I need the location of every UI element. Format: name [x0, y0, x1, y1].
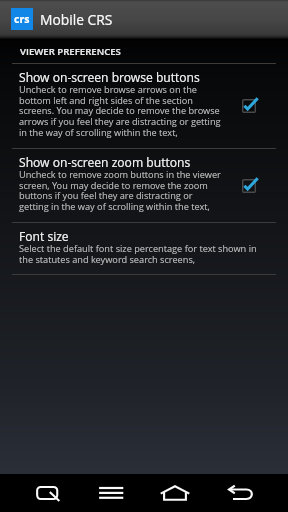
button[interactable]: Show on-screen browse buttons [0, 64, 288, 148]
button[interactable]: Recent apps [16, 474, 80, 512]
button[interactable]: Toggle [242, 177, 288, 195]
staticText: screen, You may decide to remove the zoo… [19, 181, 208, 191]
staticText: bottom left and right sides of the secti… [19, 96, 193, 106]
button[interactable]: Menu [79, 474, 143, 512]
staticText: buttons if you feel they are distracting… [19, 191, 193, 201]
button[interactable]: Font size [0, 223, 288, 274]
staticText: getting in the way of scrolling within t… [19, 202, 210, 212]
button[interactable]: Home [143, 474, 207, 512]
button[interactable]: App icon, navigate up [11, 8, 33, 30]
staticText: Mobile CRS [40, 10, 113, 29]
staticText: Uncheck to remove zoom buttons in the vi… [19, 170, 221, 180]
staticText: Font size [19, 229, 69, 244]
staticText: Show on-screen zoom buttons [19, 155, 191, 170]
staticText: arrows if you feel they are distracting … [19, 117, 221, 127]
staticText: Select the default font size percentage … [19, 244, 257, 254]
button[interactable]: Back [208, 474, 272, 512]
staticText: Uncheck to remove browse arrows on the [19, 85, 197, 95]
button[interactable]: Toggle [242, 97, 288, 115]
staticText: in the way of scrolling within the text, [19, 128, 178, 138]
staticText: VIEWER PREFERENCES [20, 46, 121, 57]
staticText: screens. You may decide to remove the br… [19, 106, 220, 116]
staticText: the statutes and keyword search screens, [19, 255, 196, 265]
staticText: Show on-screen browse buttons [19, 70, 200, 85]
staticText: crs [14, 12, 30, 26]
button[interactable]: Show on-screen zoom buttons [0, 149, 288, 222]
